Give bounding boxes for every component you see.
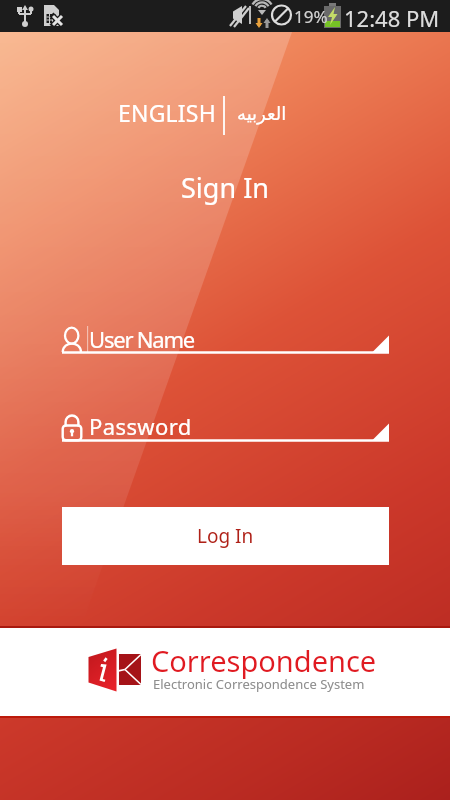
button[interactable]: User Name xyxy=(62,320,389,356)
staticText: Log In xyxy=(197,523,254,549)
staticText: User Name xyxy=(89,324,195,354)
button[interactable]: Password xyxy=(62,408,389,444)
staticText: 12:48 PM xyxy=(344,3,440,33)
staticText: Electronic Correspondence System xyxy=(153,675,365,693)
button[interactable]: العربيه xyxy=(229,95,295,132)
staticText: العربيه xyxy=(237,103,287,124)
staticText: Password xyxy=(89,411,192,441)
button[interactable]: ENGLISH xyxy=(110,89,224,136)
staticText: ENGLISH xyxy=(118,97,216,128)
staticText: 19% xyxy=(294,5,328,28)
staticText: Correspondence xyxy=(151,641,377,680)
button[interactable]: Log In xyxy=(62,507,389,565)
staticText: Sign In xyxy=(0,169,450,206)
